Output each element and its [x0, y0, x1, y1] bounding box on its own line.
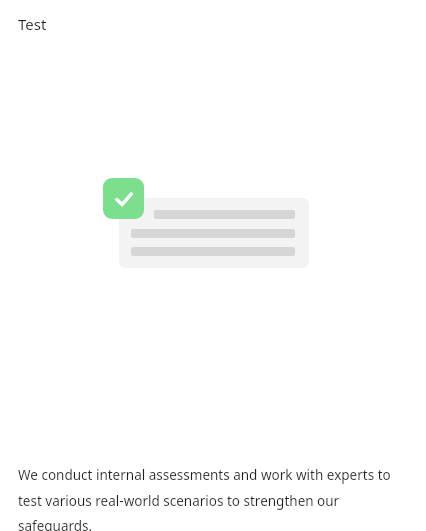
staticText: We conduct internal assessments and work… — [18, 466, 408, 531]
other: Verified — [103, 178, 144, 219]
staticText: Test — [18, 14, 47, 34]
